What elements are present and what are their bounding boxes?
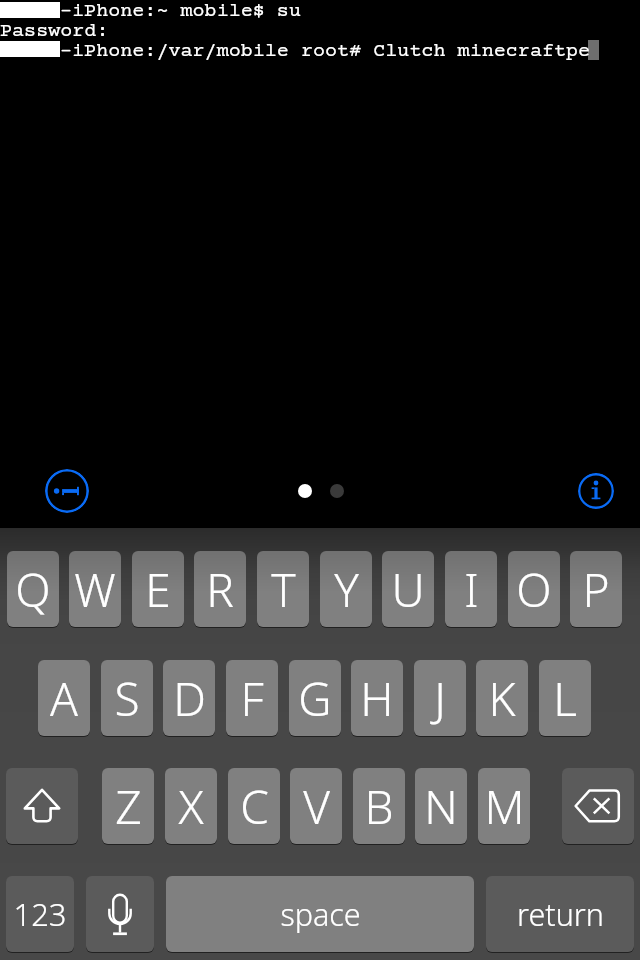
staticText: B	[364, 775, 394, 838]
staticText: Password:	[0, 20, 109, 43]
staticText: Y	[334, 558, 359, 621]
button[interactable]: E	[132, 551, 184, 627]
button[interactable]: Shift	[6, 768, 78, 844]
button[interactable]: J	[414, 660, 466, 736]
button[interactable]: S	[101, 660, 153, 736]
button[interactable]: C	[228, 768, 280, 844]
button[interactable]: K	[476, 660, 528, 736]
button[interactable]: Q	[7, 551, 59, 627]
button[interactable]: V	[290, 768, 342, 844]
staticText: -iPhone:/var/mobile root# Clutch minecra…	[60, 40, 591, 63]
button[interactable]: Backspace	[562, 768, 634, 844]
staticText: S	[114, 667, 140, 730]
button[interactable]: Z	[102, 768, 154, 844]
button[interactable]: Show keyboard	[45, 469, 89, 513]
button[interactable]: H	[351, 660, 403, 736]
staticText: N	[424, 775, 458, 838]
button[interactable]: X	[165, 768, 217, 844]
staticText: E	[145, 558, 171, 621]
staticText: C	[240, 775, 269, 838]
staticText: D	[173, 667, 206, 730]
staticText: return	[517, 893, 604, 935]
staticText: K	[488, 667, 516, 730]
staticText: F	[240, 667, 264, 730]
staticText: H	[360, 667, 394, 730]
staticText: V	[303, 775, 330, 838]
staticText: W	[74, 558, 116, 621]
button[interactable]: space	[166, 876, 474, 952]
button[interactable]: F	[226, 660, 278, 736]
button[interactable]: N	[415, 768, 467, 844]
staticText: I	[464, 558, 479, 621]
button[interactable]: B	[353, 768, 405, 844]
staticText: -iPhone:~ mobile$ su	[60, 0, 301, 23]
button[interactable]: M	[478, 768, 530, 844]
button[interactable]: U	[382, 551, 434, 627]
staticText: L	[553, 667, 577, 730]
button[interactable]: I	[445, 551, 497, 627]
staticText: J	[434, 667, 446, 730]
button[interactable]: O	[508, 551, 560, 627]
staticText: U	[391, 558, 425, 621]
staticText: X	[178, 775, 204, 838]
staticText: 123	[13, 893, 67, 935]
staticText: P	[582, 558, 610, 621]
button[interactable]: W	[69, 551, 121, 627]
button[interactable]: R	[194, 551, 246, 627]
staticText: G	[298, 667, 332, 730]
button[interactable]: P	[570, 551, 622, 627]
staticText: M	[484, 775, 525, 838]
button[interactable]: Dictation	[86, 876, 154, 952]
staticText: Q	[15, 558, 51, 621]
staticText: T	[271, 558, 296, 621]
staticText: O	[516, 558, 552, 621]
button[interactable]: 123	[6, 876, 74, 952]
staticText: A	[50, 667, 78, 730]
staticText: space	[280, 893, 361, 935]
button[interactable]: Info	[578, 473, 614, 509]
button[interactable]: A	[38, 660, 90, 736]
button[interactable]: Y	[320, 551, 372, 627]
staticText: Z	[115, 775, 142, 838]
button[interactable]: return	[486, 876, 634, 952]
button[interactable]: L	[539, 660, 591, 736]
button[interactable]: D	[163, 660, 215, 736]
button[interactable]: T	[257, 551, 309, 627]
button[interactable]: G	[289, 660, 341, 736]
staticText: R	[206, 558, 234, 621]
